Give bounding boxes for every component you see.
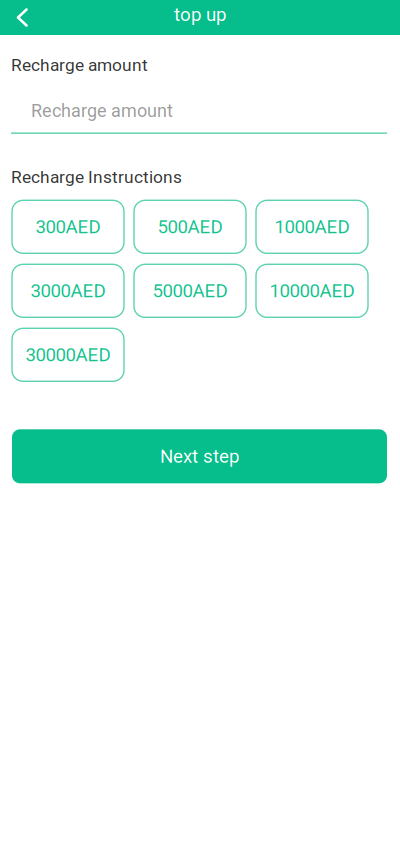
button[interactable]: 5000AED <box>134 264 246 317</box>
staticText: 300AED <box>35 216 100 238</box>
button[interactable]: 300AED <box>12 200 124 253</box>
staticText: 3000AED <box>30 280 105 302</box>
button[interactable]: 500AED <box>134 200 246 253</box>
staticText: 5000AED <box>152 280 227 302</box>
button[interactable]: 10000AED <box>256 264 368 317</box>
staticText: Recharge amount <box>11 55 148 75</box>
staticText: 30000AED <box>25 344 110 366</box>
staticText: 500AED <box>157 216 222 238</box>
staticText: 1000AED <box>274 216 349 238</box>
staticText: Recharge amount <box>31 100 173 121</box>
button[interactable]: 1000AED <box>256 200 368 253</box>
button[interactable]: Back <box>0 0 44 35</box>
button[interactable]: 30000AED <box>12 328 124 381</box>
staticText: Next step <box>160 445 239 467</box>
staticText: Recharge Instructions <box>11 167 182 187</box>
staticText: 10000AED <box>269 280 354 302</box>
staticText: top up <box>174 4 226 25</box>
button[interactable]: Next step <box>12 429 387 483</box>
button[interactable]: 3000AED <box>12 264 124 317</box>
